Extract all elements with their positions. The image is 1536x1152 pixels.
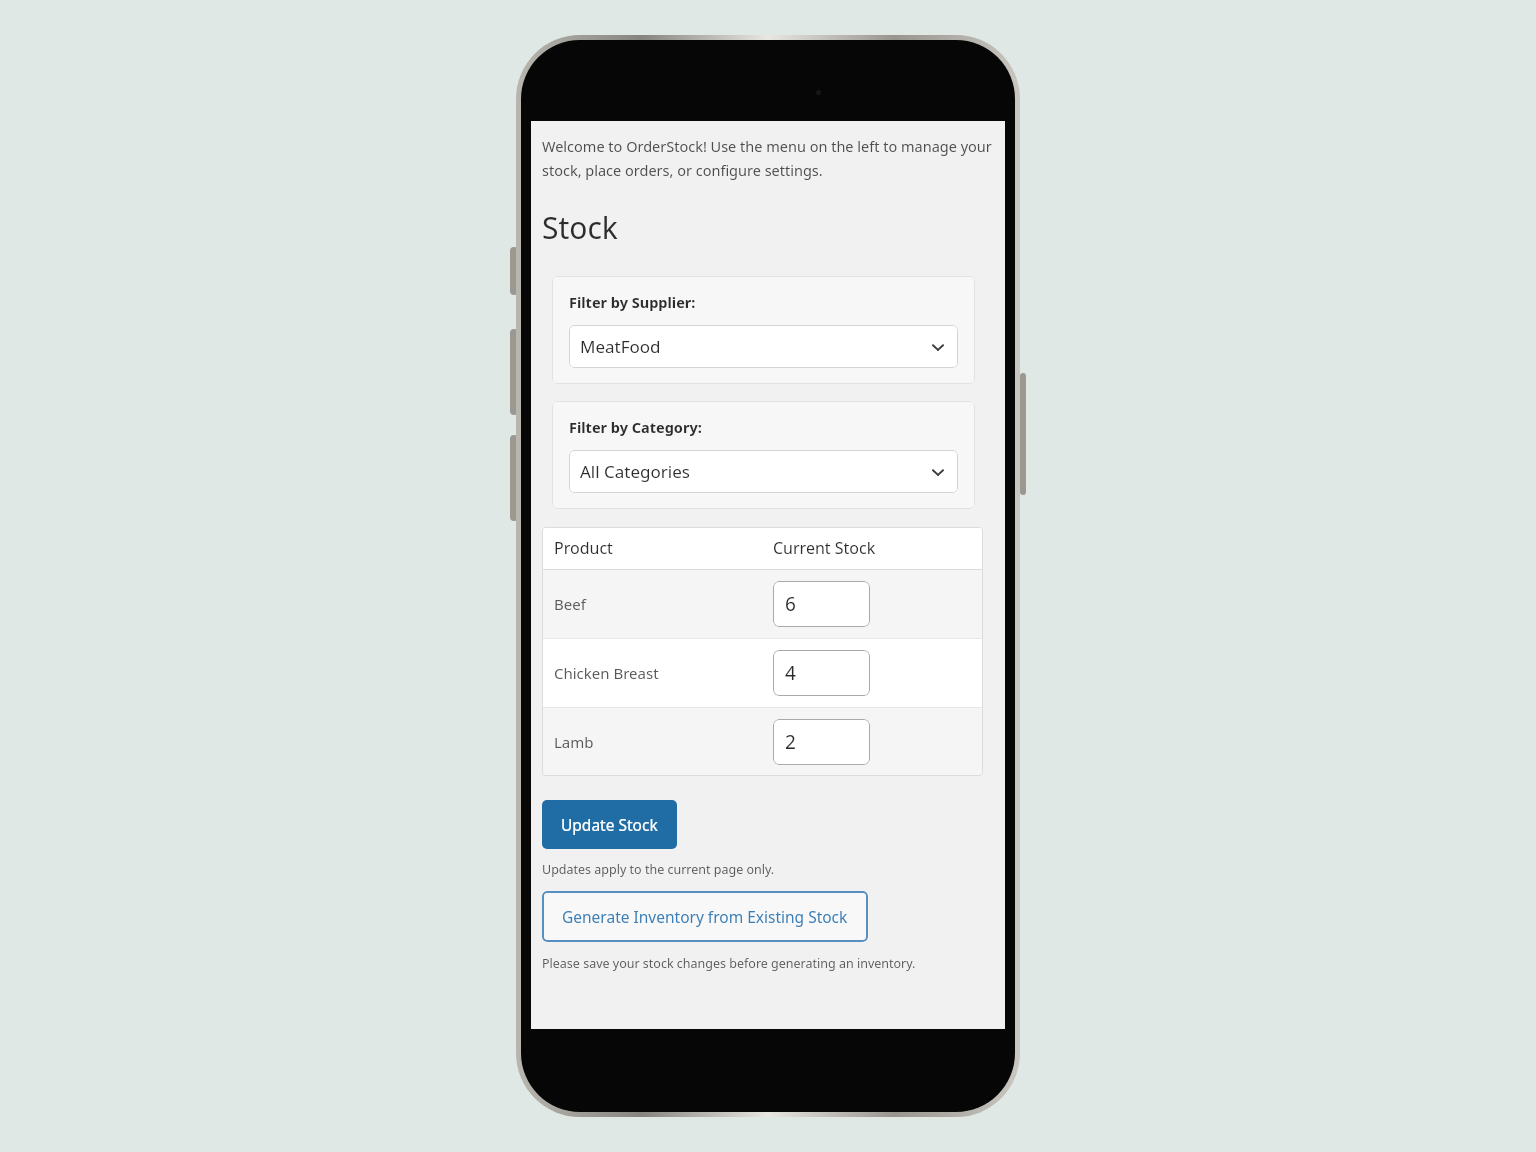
- staticText: Chicken Breast: [554, 663, 773, 683]
- button[interactable]: 4: [773, 650, 870, 696]
- staticText: 2: [785, 729, 796, 755]
- staticText: Generate Inventory from Existing Stock: [562, 906, 848, 927]
- staticText: Stock: [542, 207, 618, 248]
- button[interactable]: 2: [773, 719, 870, 765]
- staticText: Updates apply to the current page only.: [542, 861, 775, 878]
- staticText: Product: [554, 537, 773, 559]
- button[interactable]: Generate Inventory from Existing Stock: [542, 891, 868, 942]
- button[interactable]: Update Stock: [542, 800, 677, 849]
- button[interactable]: MeatFood: [569, 325, 958, 368]
- staticText: 4: [785, 660, 796, 686]
- other: Open dropdown: [929, 463, 947, 481]
- staticText: Current Stock: [773, 537, 983, 559]
- staticText: Welcome to OrderStock! Use the menu on t…: [542, 136, 995, 180]
- staticText: Filter by Supplier:: [569, 292, 696, 312]
- staticText: Lamb: [554, 732, 773, 752]
- staticText: All Categories: [580, 460, 929, 483]
- staticText: MeatFood: [580, 335, 929, 358]
- other: Open dropdown: [929, 338, 947, 356]
- staticText: 6: [785, 591, 796, 617]
- button[interactable]: All Categories: [569, 450, 958, 493]
- button[interactable]: 6: [773, 581, 870, 627]
- staticText: Please save your stock changes before ge…: [542, 955, 916, 972]
- staticText: Filter by Category:: [569, 417, 702, 437]
- staticText: Beef: [554, 594, 773, 614]
- staticText: Update Stock: [561, 814, 658, 835]
